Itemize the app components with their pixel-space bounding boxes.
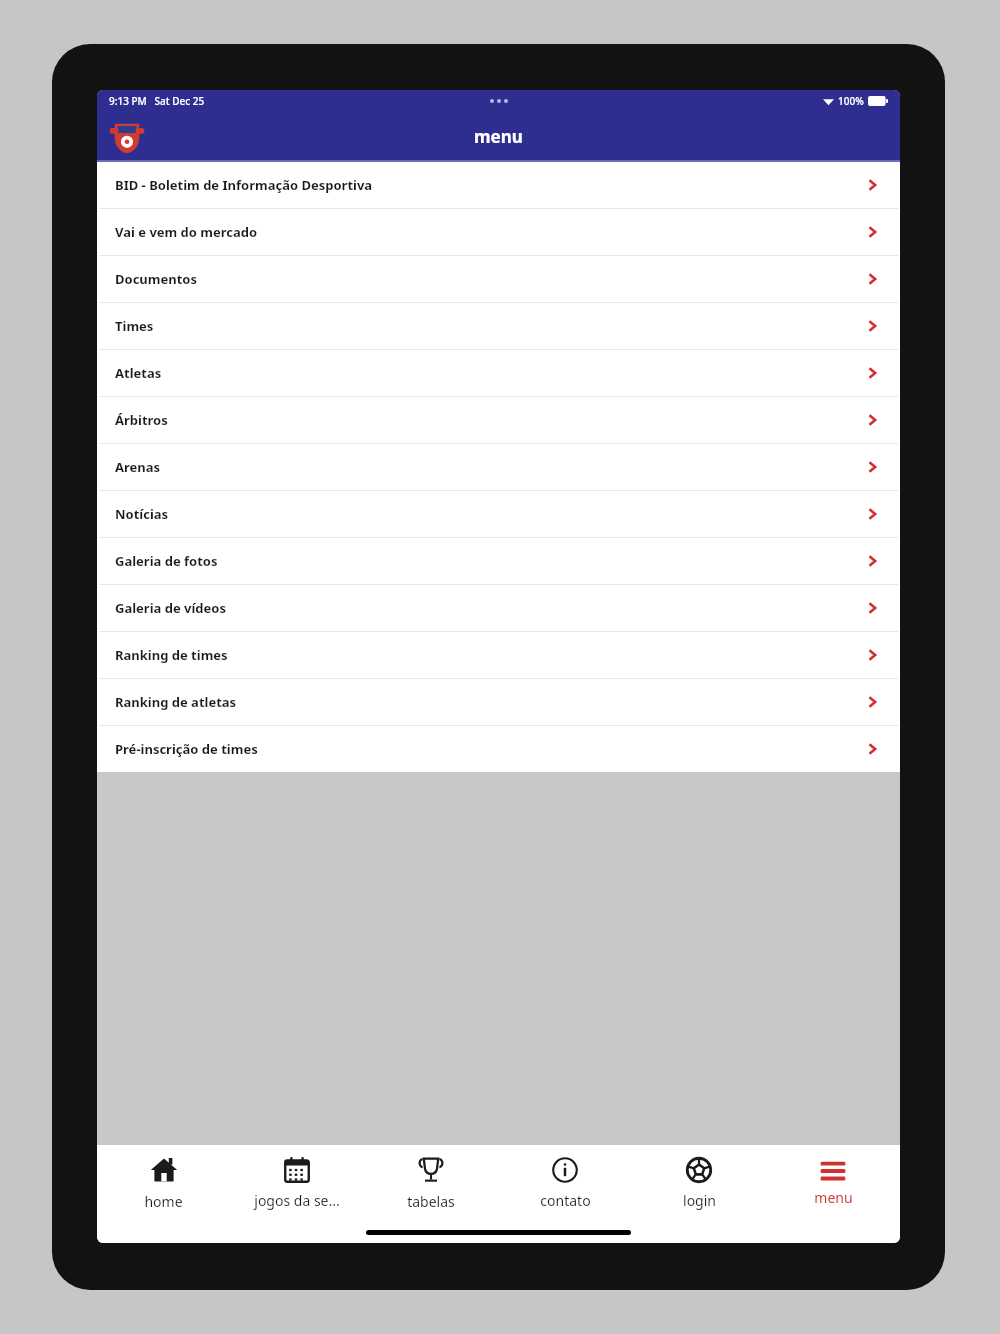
button[interactable]: Ranking de times xyxy=(97,632,900,678)
other: Login xyxy=(685,1156,713,1184)
button[interactable]: Ranking de atletas xyxy=(97,679,900,725)
staticText: Galeria de vídeos xyxy=(115,599,864,617)
button[interactable]: Logo xyxy=(107,116,147,156)
staticText: jogos da se... xyxy=(254,1191,340,1210)
other: Menu xyxy=(819,1159,847,1181)
button[interactable]: Contato xyxy=(498,1145,632,1221)
button[interactable]: BID - Boletim de Informação Desportiva xyxy=(97,162,900,208)
button[interactable]: Atletas xyxy=(97,350,900,396)
button[interactable]: Times xyxy=(97,303,900,349)
other: Home xyxy=(149,1155,179,1185)
staticText: Notícias xyxy=(115,505,864,523)
button[interactable]: Home xyxy=(97,1145,230,1221)
staticText: 9:13 PM Sat Dec 25 xyxy=(109,94,205,108)
staticText: 100% xyxy=(838,94,864,108)
button[interactable]: Login xyxy=(632,1145,766,1221)
button[interactable]: Arenas xyxy=(97,444,900,490)
other: Jogos da semana xyxy=(283,1156,311,1184)
button[interactable]: Documentos xyxy=(97,256,900,302)
staticText: contato xyxy=(540,1191,591,1210)
button[interactable]: Galeria de fotos xyxy=(97,538,900,584)
button[interactable]: Menu xyxy=(766,1145,900,1221)
staticText: login xyxy=(683,1191,716,1210)
staticText: Ranking de atletas xyxy=(115,693,864,711)
staticText: Times xyxy=(115,317,864,335)
button[interactable]: Vai e vem do mercado xyxy=(97,209,900,255)
staticText: Atletas xyxy=(115,364,864,382)
other: Tabelas xyxy=(416,1155,446,1185)
button[interactable]: Notícias xyxy=(97,491,900,537)
button[interactable]: Tabelas xyxy=(364,1145,498,1221)
staticText: Documentos xyxy=(115,270,864,288)
staticText: Árbitros xyxy=(115,411,864,429)
staticText: Pré-inscrição de times xyxy=(115,740,864,758)
staticText: menu xyxy=(474,125,523,148)
staticText: menu xyxy=(814,1188,853,1207)
staticText: BID - Boletim de Informação Desportiva xyxy=(115,176,864,194)
other: Contato xyxy=(551,1156,579,1184)
button[interactable]: Árbitros xyxy=(97,397,900,443)
button[interactable]: Pré-inscrição de times xyxy=(97,726,900,772)
staticText: Galeria de fotos xyxy=(115,552,864,570)
staticText: Arenas xyxy=(115,458,864,476)
staticText: Vai e vem do mercado xyxy=(115,223,864,241)
staticText: Ranking de times xyxy=(115,646,864,664)
button[interactable]: Jogos da semana xyxy=(230,1145,364,1221)
button[interactable]: Galeria de vídeos xyxy=(97,585,900,631)
staticText: tabelas xyxy=(407,1192,455,1211)
staticText: home xyxy=(144,1192,183,1211)
